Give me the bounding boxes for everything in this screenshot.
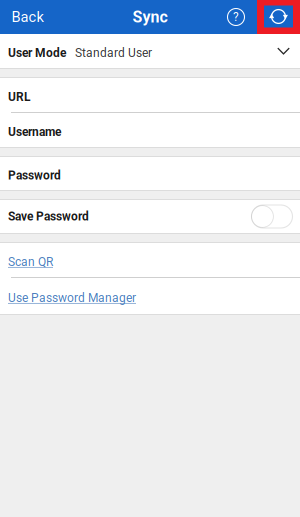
staticText: Use Password Manager (8, 291, 136, 305)
button[interactable]: Back (0, 0, 53, 34)
button[interactable]: Password (0, 157, 300, 190)
staticText: Scan QR (8, 255, 53, 269)
button[interactable]: URL (0, 78, 300, 112)
button[interactable]: Save Password (251, 205, 293, 228)
button[interactable]: Help (215, 0, 257, 34)
staticText: User Mode (8, 46, 66, 60)
staticText: ? (233, 10, 239, 24)
staticText: Standard User (66, 46, 152, 60)
button[interactable]: Username (0, 113, 300, 147)
staticText: Username (8, 125, 61, 139)
staticText: Password (8, 168, 61, 183)
staticText: URL (8, 90, 30, 104)
staticText: Back (11, 8, 43, 26)
staticText: Save Password (8, 209, 89, 224)
button[interactable]: User Mode (0, 34, 300, 68)
button[interactable]: Use Password Manager (0, 278, 300, 314)
button[interactable]: Scan QR (0, 243, 300, 277)
staticText: Sync (132, 8, 167, 26)
button[interactable]: Sync now (257, 0, 300, 34)
